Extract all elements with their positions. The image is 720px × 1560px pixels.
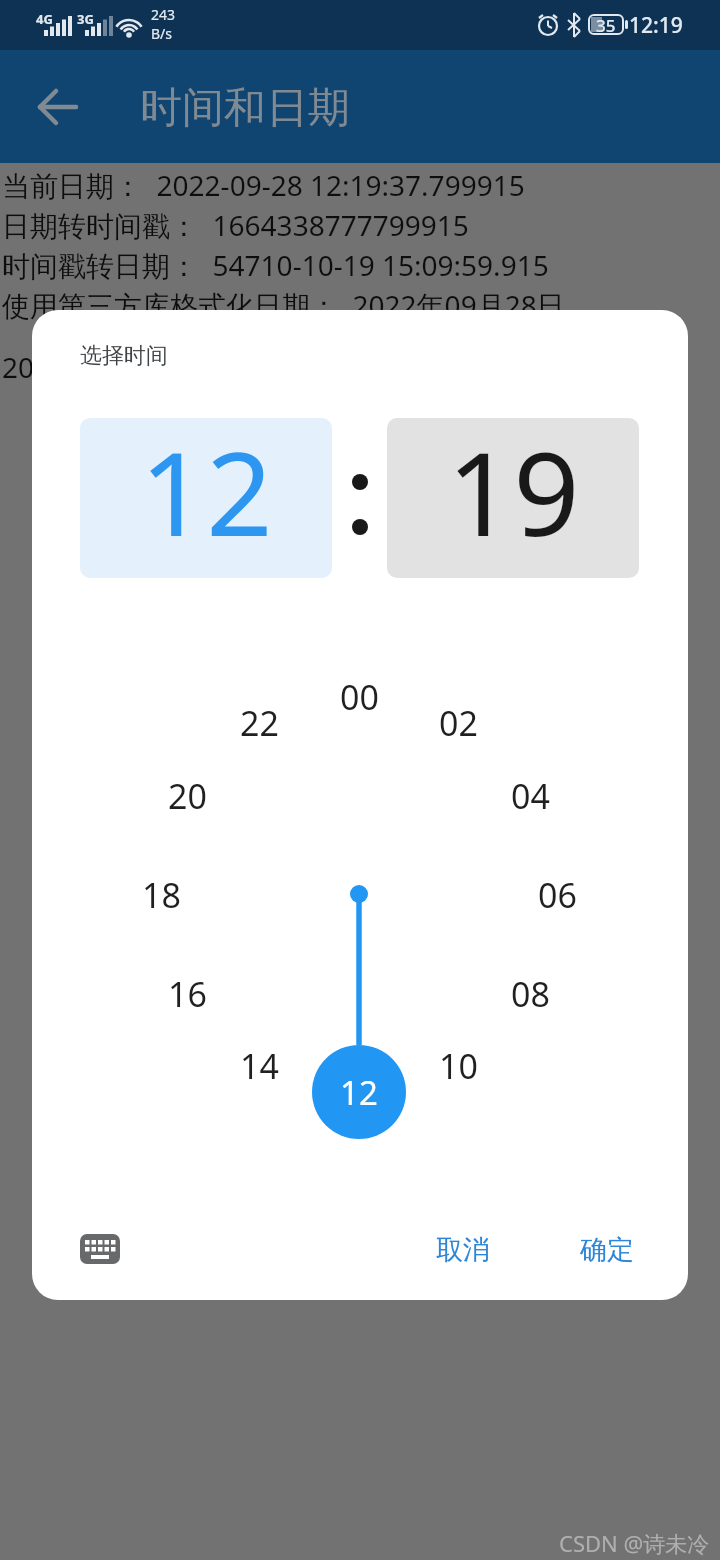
staticText: 选择时间	[80, 342, 168, 370]
staticText: 02	[439, 700, 478, 744]
staticText: 日期转时间戳： 1664338777799915	[2, 206, 469, 242]
button[interactable]: 取消	[403, 1226, 523, 1274]
button[interactable]: 22	[229, 700, 289, 744]
button[interactable]: 20	[157, 773, 217, 817]
staticText: CSDN @诗未冷	[559, 1528, 710, 1556]
button[interactable]	[80, 1234, 120, 1264]
staticText: 使用第三方库格式化日期： 2022年09月28日	[2, 286, 565, 322]
button[interactable]: 04	[500, 773, 560, 817]
button[interactable]: 00	[329, 674, 389, 718]
staticText: 08	[511, 971, 550, 1015]
staticText: 确定	[580, 1233, 634, 1267]
staticText: 10	[439, 1043, 478, 1087]
staticText: 12	[140, 418, 273, 570]
button[interactable]	[36, 86, 78, 128]
staticText: 16	[168, 971, 207, 1015]
staticText: 18	[142, 872, 181, 916]
staticText: 时间戳转日期： 54710-10-19 15:09:59.915	[2, 246, 549, 282]
staticText: 19	[447, 418, 580, 570]
button[interactable]: 06	[527, 872, 587, 916]
button[interactable]: 18	[131, 872, 191, 916]
staticText: 时间和日期	[140, 82, 350, 132]
staticText: 12	[340, 1070, 378, 1115]
button[interactable]: 02	[428, 700, 488, 744]
button[interactable]: 16	[157, 971, 217, 1015]
staticText: 14	[240, 1043, 279, 1087]
staticText: 12:19	[629, 11, 683, 40]
staticText: 3G	[77, 10, 94, 24]
staticText: 06	[538, 872, 577, 916]
staticText: 20时19分37秒	[2, 348, 183, 384]
button[interactable]: 10	[428, 1043, 488, 1087]
staticText: 22	[240, 700, 279, 744]
staticText: 4G	[36, 10, 53, 24]
button[interactable]: 19	[387, 418, 639, 578]
button[interactable]: 12	[80, 418, 332, 578]
staticText: 当前日期： 2022-09-28 12:19:37.799915	[2, 166, 525, 202]
staticText: 20	[168, 773, 207, 817]
staticText: 04	[511, 773, 550, 817]
staticText: B/s	[151, 24, 173, 42]
button[interactable]: 12	[312, 1045, 406, 1139]
staticText: 取消	[436, 1233, 490, 1267]
button[interactable]: 14	[229, 1043, 289, 1087]
staticText: 243	[151, 5, 176, 23]
staticText: 00	[340, 674, 379, 718]
button[interactable]: 确定	[547, 1226, 667, 1274]
button[interactable]: 08	[500, 971, 560, 1015]
staticText: 35	[596, 14, 616, 36]
